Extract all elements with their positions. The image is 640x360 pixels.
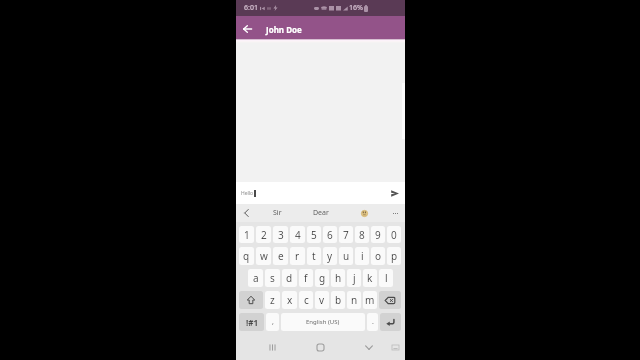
staticText: d (286, 271, 293, 285)
button[interactable]: Send (388, 186, 402, 200)
staticText: u (343, 249, 350, 263)
button[interactable]: m (363, 291, 377, 309)
button[interactable]: Emoji (343, 204, 385, 222)
button[interactable]: Hide keyboard (345, 334, 393, 360)
staticText: g (319, 271, 326, 285)
button[interactable]: a (248, 269, 263, 287)
staticText: English (US) (306, 318, 340, 326)
staticText: 7 (343, 228, 349, 242)
staticText: t (312, 249, 316, 263)
staticText: , (272, 317, 274, 327)
button[interactable]: Shift (239, 291, 263, 309)
button[interactable]: k (363, 269, 377, 287)
button[interactable]: 7 (339, 226, 353, 243)
button[interactable]: English (US) (281, 313, 365, 331)
button[interactable]: y (323, 247, 337, 265)
button[interactable]: 0 (387, 226, 401, 243)
button[interactable]: z (265, 291, 280, 309)
staticText: l (385, 271, 388, 285)
button[interactable]: 5 (307, 226, 321, 243)
staticText: r (295, 249, 300, 263)
button[interactable]: 9 (371, 226, 385, 243)
button[interactable]: p (387, 247, 401, 265)
staticText: n (351, 293, 358, 307)
staticText: a (253, 271, 259, 285)
staticText: Sir (273, 208, 282, 218)
button[interactable]: Backspace (379, 291, 401, 309)
staticText: q (243, 249, 250, 263)
button[interactable]: More options (385, 204, 405, 222)
staticText: 5 (311, 228, 317, 242)
button[interactable]: 8 (355, 226, 369, 243)
button[interactable]: i (355, 247, 369, 265)
button[interactable]: Previous suggestions (236, 204, 256, 222)
staticText: p (391, 249, 398, 263)
button[interactable]: Navigate up (236, 19, 258, 39)
staticText: 16% (349, 3, 363, 13)
button[interactable]: x (282, 291, 297, 309)
staticText: 2 (261, 228, 267, 242)
button[interactable]: f (299, 269, 313, 287)
staticText: e (278, 249, 284, 263)
staticText: 6 (327, 228, 333, 242)
staticText: j (353, 271, 356, 285)
staticText: w (260, 249, 268, 263)
button[interactable]: v (315, 291, 329, 309)
staticText: y (327, 249, 333, 263)
button[interactable]: b (331, 291, 345, 309)
button[interactable]: 4 (290, 226, 305, 243)
button[interactable]: u (339, 247, 353, 265)
staticText: !#1 (246, 317, 258, 328)
staticText: k (367, 271, 373, 285)
button[interactable]: h (331, 269, 345, 287)
staticText: f (304, 271, 308, 285)
staticText: z (270, 293, 275, 307)
staticText: 3 (278, 228, 284, 242)
button[interactable]: e (273, 247, 288, 265)
button[interactable]: Sir (256, 204, 298, 222)
staticText: c (304, 293, 309, 307)
staticText: 1 (244, 228, 250, 242)
staticText: v (319, 293, 325, 307)
staticText: i (361, 249, 364, 263)
button[interactable]: Change keyboard (386, 334, 405, 360)
staticText: x (287, 293, 293, 307)
button[interactable]: s (265, 269, 280, 287)
staticText: Hello (241, 190, 254, 197)
staticText: 8 (359, 228, 365, 242)
button[interactable]: g (315, 269, 329, 287)
button[interactable]: o (371, 247, 385, 265)
button[interactable]: q (239, 247, 254, 265)
button[interactable]: Recent apps (248, 334, 296, 360)
button[interactable]: r (290, 247, 305, 265)
staticText: o (375, 249, 382, 263)
staticText: Dear (313, 208, 329, 218)
button[interactable]: 1 (239, 226, 254, 243)
button[interactable]: Enter (380, 313, 401, 331)
button[interactable]: n (347, 291, 361, 309)
staticText: 6:01 (244, 3, 258, 13)
staticText: John Doe (266, 24, 302, 35)
button[interactable]: 6 (323, 226, 337, 243)
button[interactable]: !#1 (239, 313, 264, 331)
button[interactable]: Dear (298, 204, 343, 222)
button[interactable]: w (256, 247, 271, 265)
staticText: 0 (391, 228, 397, 242)
button[interactable]: c (299, 291, 313, 309)
staticText: 9 (375, 228, 381, 242)
button[interactable]: 2 (256, 226, 271, 243)
staticText: s (270, 271, 275, 285)
staticText: b (335, 293, 342, 307)
button[interactable]: 3 (273, 226, 288, 243)
staticText: m (365, 293, 375, 307)
button[interactable]: t (307, 247, 321, 265)
staticText: 4 (295, 228, 301, 242)
staticText: h (335, 271, 342, 285)
button[interactable]: d (282, 269, 297, 287)
button[interactable]: . (367, 313, 378, 331)
button[interactable]: j (347, 269, 361, 287)
staticText: . (372, 317, 374, 327)
button[interactable]: l (379, 269, 393, 287)
button[interactable]: Home (296, 334, 344, 360)
button[interactable]: , (266, 313, 279, 331)
